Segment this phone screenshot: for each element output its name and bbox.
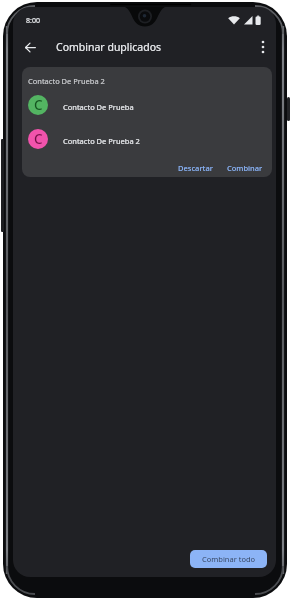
button[interactable]: Descartar bbox=[172, 160, 218, 175]
staticText: Contacto De Prueba bbox=[63, 102, 134, 112]
button[interactable]: Combinar bbox=[222, 160, 268, 175]
button[interactable]: C bbox=[28, 129, 264, 150]
button[interactable]: Combinar todo bbox=[190, 550, 267, 568]
staticText: C bbox=[34, 96, 43, 114]
button[interactable] bbox=[252, 34, 274, 60]
staticText: C bbox=[34, 130, 43, 148]
staticText: Contacto De Prueba 2 bbox=[28, 76, 105, 86]
button[interactable] bbox=[17, 34, 43, 60]
button[interactable]: C bbox=[28, 95, 264, 116]
staticText: Combinar bbox=[227, 163, 263, 173]
staticText: Contacto De Prueba 2 bbox=[63, 136, 140, 146]
staticText: Combinar duplicados bbox=[56, 40, 162, 54]
staticText: 8:00 bbox=[26, 16, 40, 26]
staticText: Descartar bbox=[178, 163, 213, 173]
staticText: Combinar todo bbox=[202, 554, 256, 564]
